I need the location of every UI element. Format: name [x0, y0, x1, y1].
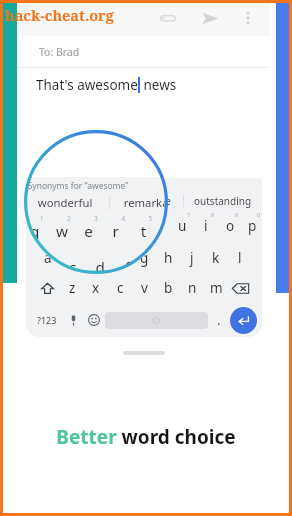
button[interactable]: m — [204, 273, 228, 303]
staticText: 3 — [91, 211, 95, 218]
button[interactable]: g — [141, 249, 168, 284]
button[interactable]: r — [102, 213, 129, 248]
button[interactable]: . — [227, 321, 251, 353]
button[interactable]: Send — [212, 0, 246, 13]
button[interactable]: c — [114, 284, 141, 318]
button[interactable]: y — [156, 213, 184, 248]
button[interactable]: b — [168, 284, 195, 318]
button[interactable]: ?123 — [27, 321, 63, 353]
button[interactable]: Enter — [251, 323, 282, 353]
staticText: f — [125, 257, 131, 277]
button[interactable]: s — [59, 249, 86, 284]
staticText: z — [69, 291, 77, 311]
button[interactable]: o — [218, 210, 242, 241]
button[interactable]: q — [26, 210, 50, 241]
button[interactable]: v — [141, 284, 168, 318]
staticText: r — [112, 221, 119, 241]
button[interactable]: f — [108, 242, 132, 273]
button[interactable]: d — [86, 249, 113, 284]
staticText: z — [69, 279, 76, 297]
button[interactable]: c — [108, 273, 132, 303]
button[interactable]: p — [265, 213, 288, 248]
staticText: 0 — [257, 211, 261, 218]
button[interactable]: e — [75, 213, 102, 248]
button[interactable]: t — [122, 210, 146, 241]
button[interactable]: p — [242, 210, 262, 241]
button[interactable]: Send — [195, 3, 225, 33]
button[interactable]: Shift — [31, 284, 59, 318]
button[interactable]: wonderful — [26, 192, 104, 209]
button[interactable]: remarkable — [110, 193, 198, 212]
button[interactable]: a — [36, 242, 60, 273]
button[interactable]: e — [74, 210, 98, 241]
button[interactable]: m — [222, 284, 249, 318]
button[interactable]: k — [222, 249, 249, 284]
button[interactable]: l — [249, 249, 276, 284]
button[interactable]: l — [228, 242, 252, 273]
button[interactable]: d — [84, 242, 108, 273]
button[interactable]: outstanding — [199, 193, 287, 212]
button[interactable]: u — [170, 210, 194, 241]
button[interactable]: w — [50, 210, 74, 241]
button[interactable]: x — [86, 284, 113, 318]
button[interactable]: More options — [256, 0, 287, 12]
button[interactable]: f — [114, 249, 141, 284]
button[interactable]: Backspace — [249, 284, 277, 318]
staticText: x — [95, 291, 104, 311]
staticText: f — [118, 249, 123, 267]
button[interactable]: Emoji — [85, 321, 110, 353]
button[interactable]: b — [156, 273, 180, 303]
button[interactable]: Emoji — [83, 306, 105, 334]
button[interactable]: Voice input — [63, 321, 85, 353]
staticText: t — [141, 221, 146, 241]
button[interactable]: More options — [234, 4, 262, 32]
button[interactable]: s — [60, 242, 84, 273]
staticText: k — [212, 249, 220, 267]
button[interactable]: h — [168, 249, 195, 284]
staticText: u — [178, 217, 187, 235]
button[interactable]: Attach file — [153, 3, 183, 33]
button[interactable]: h — [156, 242, 180, 273]
button[interactable]: a — [32, 249, 59, 284]
button[interactable]: n — [195, 284, 222, 318]
button[interactable]: g — [132, 242, 156, 273]
staticText: m — [210, 279, 223, 297]
staticText: wonderful — [38, 195, 93, 211]
button[interactable]: z — [60, 273, 84, 303]
button[interactable]: Enter — [230, 307, 257, 334]
button[interactable]: x — [84, 273, 108, 303]
button[interactable]: y — [146, 210, 170, 241]
button[interactable]: j — [180, 242, 204, 273]
staticText: . — [237, 327, 241, 347]
button[interactable]: i — [194, 210, 218, 241]
button[interactable]: Voice input — [63, 306, 83, 334]
button[interactable]: u — [184, 213, 211, 248]
button[interactable]: Attach file — [164, 0, 198, 13]
button[interactable]: k — [204, 242, 228, 273]
button[interactable]: Space — [110, 328, 227, 347]
button[interactable]: t — [129, 213, 156, 248]
button[interactable]: j — [195, 249, 222, 284]
button[interactable]: z — [59, 284, 86, 318]
button[interactable]: w — [48, 213, 75, 248]
button[interactable]: o — [238, 213, 265, 248]
button[interactable]: n — [180, 273, 204, 303]
staticText: y — [155, 217, 162, 235]
button[interactable]: . — [208, 306, 230, 334]
staticText: 3 — [94, 214, 99, 222]
button[interactable]: i — [211, 213, 238, 248]
staticText: h — [164, 249, 173, 267]
staticText: That's awesome — [32, 62, 147, 82]
button[interactable]: r — [98, 210, 122, 241]
button[interactable]: remarkable — [105, 192, 183, 209]
button[interactable]: Shift — [35, 273, 60, 303]
button[interactable]: q — [21, 213, 48, 248]
button[interactable]: ?123 — [31, 306, 63, 334]
button[interactable]: wonderful — [21, 193, 109, 212]
staticText: s — [69, 249, 76, 267]
button[interactable]: v — [132, 273, 156, 303]
button[interactable]: Backspace — [228, 273, 253, 303]
button[interactable]: outstanding — [184, 192, 262, 209]
